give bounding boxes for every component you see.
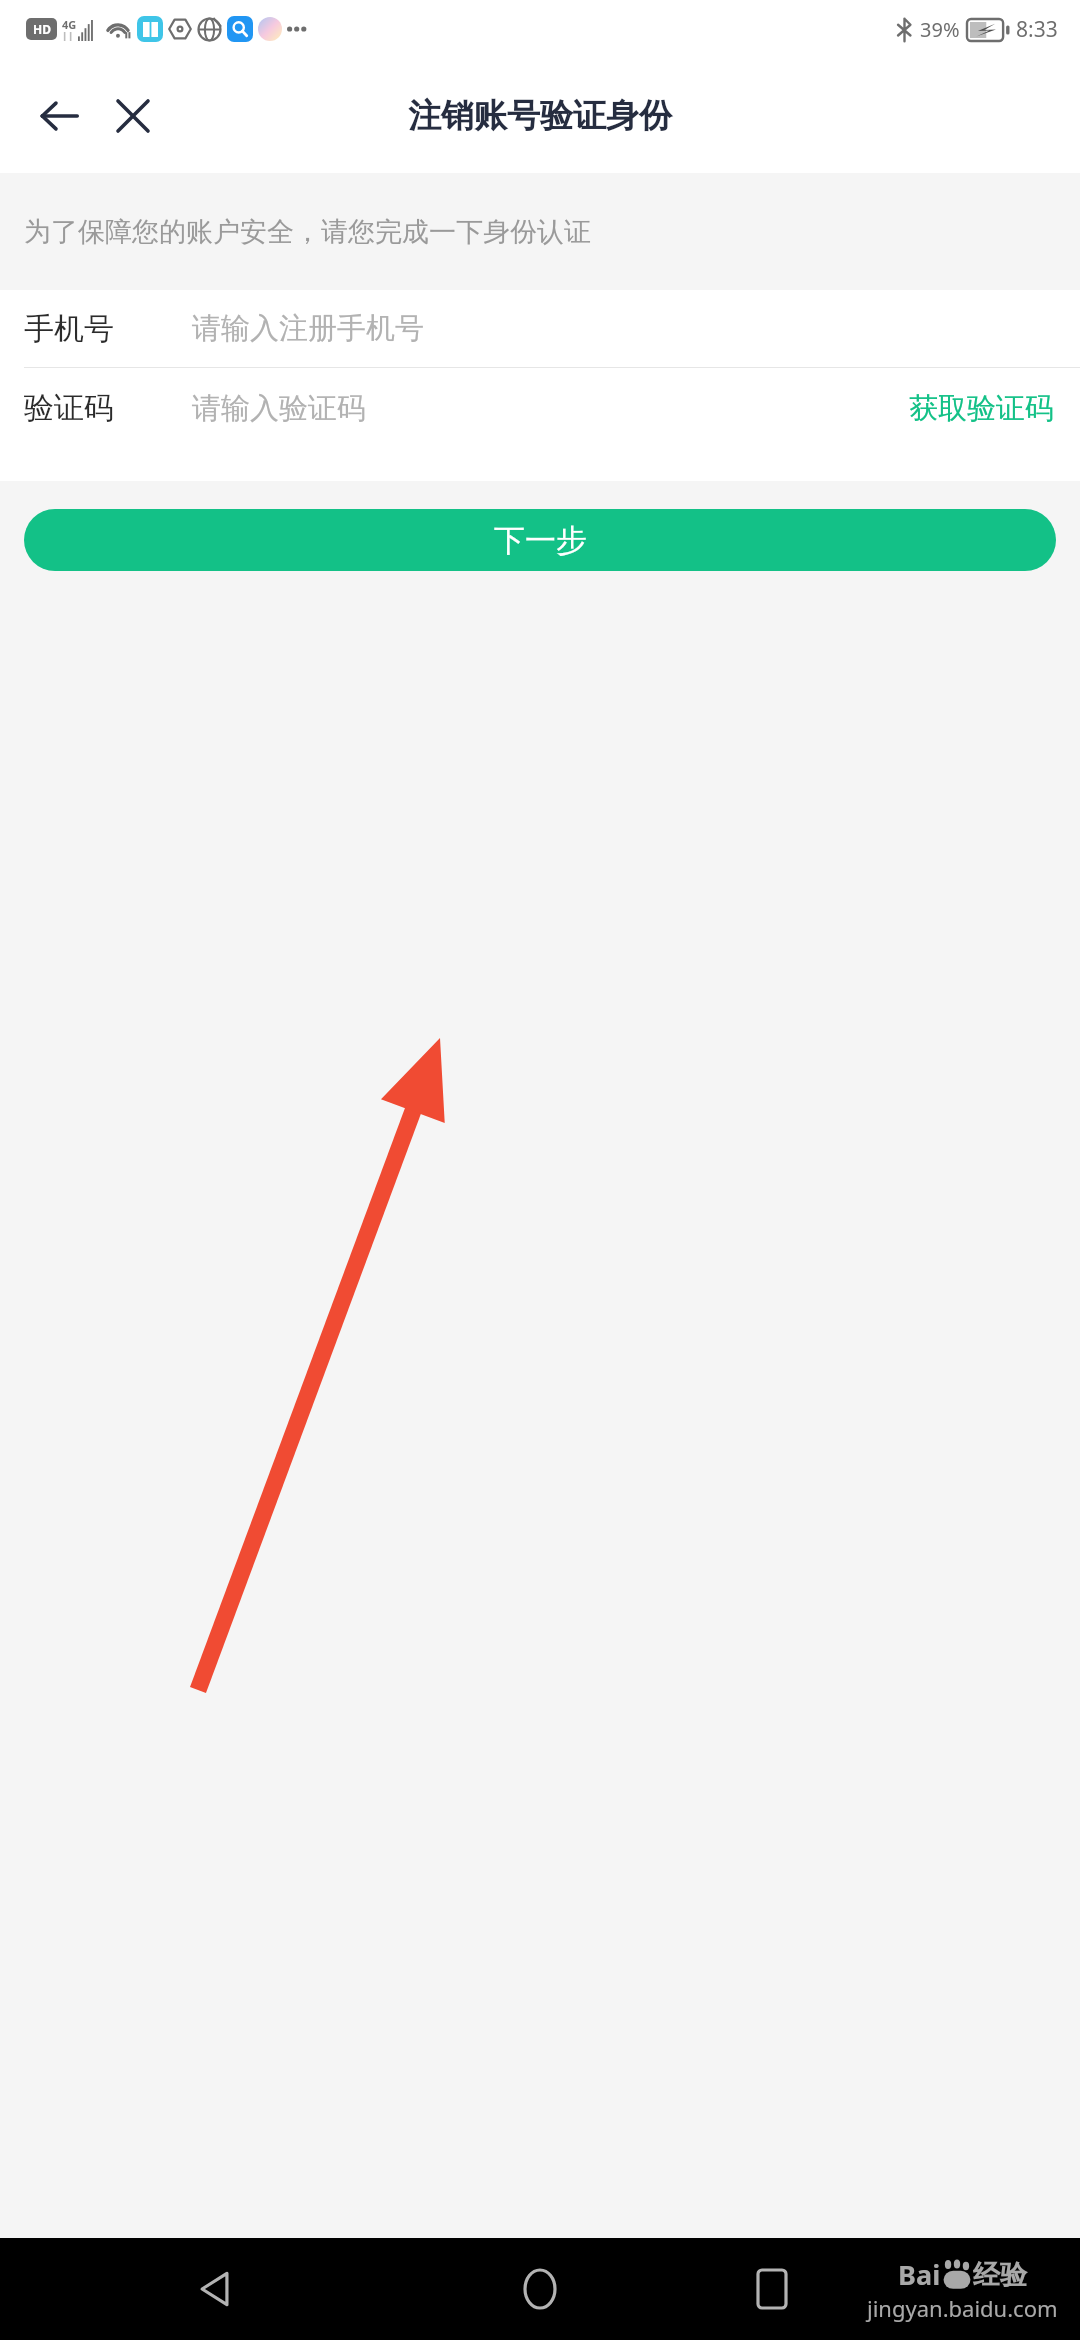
staticText: 请输入验证码 [192, 390, 366, 427]
staticText: 下一步 [494, 521, 587, 560]
button[interactable]: Back [30, 87, 88, 145]
button[interactable]: 验证码 [0, 368, 1080, 448]
staticText: 为了保障您的账户安全，请您完成一下身份认证 [24, 215, 591, 249]
button[interactable]: Recents [724, 2241, 820, 2337]
staticText: jingyan.baidu.com [867, 2293, 1058, 2323]
staticText: 8:33 [1016, 15, 1058, 44]
staticText: 验证码 [24, 389, 114, 427]
staticText: 获取验证码 [909, 390, 1054, 427]
button[interactable]: 获取验证码 [905, 382, 1058, 435]
staticText: 39% [920, 16, 960, 43]
button[interactable]: Home [492, 2241, 588, 2337]
staticText: 请输入注册手机号 [192, 310, 424, 347]
staticText: HD [33, 21, 51, 37]
staticText: 手机号 [24, 310, 114, 348]
button[interactable]: Back [166, 2241, 262, 2337]
button[interactable]: Close [106, 89, 160, 143]
button[interactable]: 手机号 [0, 290, 1080, 367]
staticText: 4G [62, 17, 77, 32]
staticText: 注销账号验证身份 [408, 95, 672, 137]
staticText: 经验 [973, 2258, 1027, 2292]
staticText: Bai [898, 2256, 941, 2293]
button[interactable]: 下一步 [24, 509, 1056, 571]
